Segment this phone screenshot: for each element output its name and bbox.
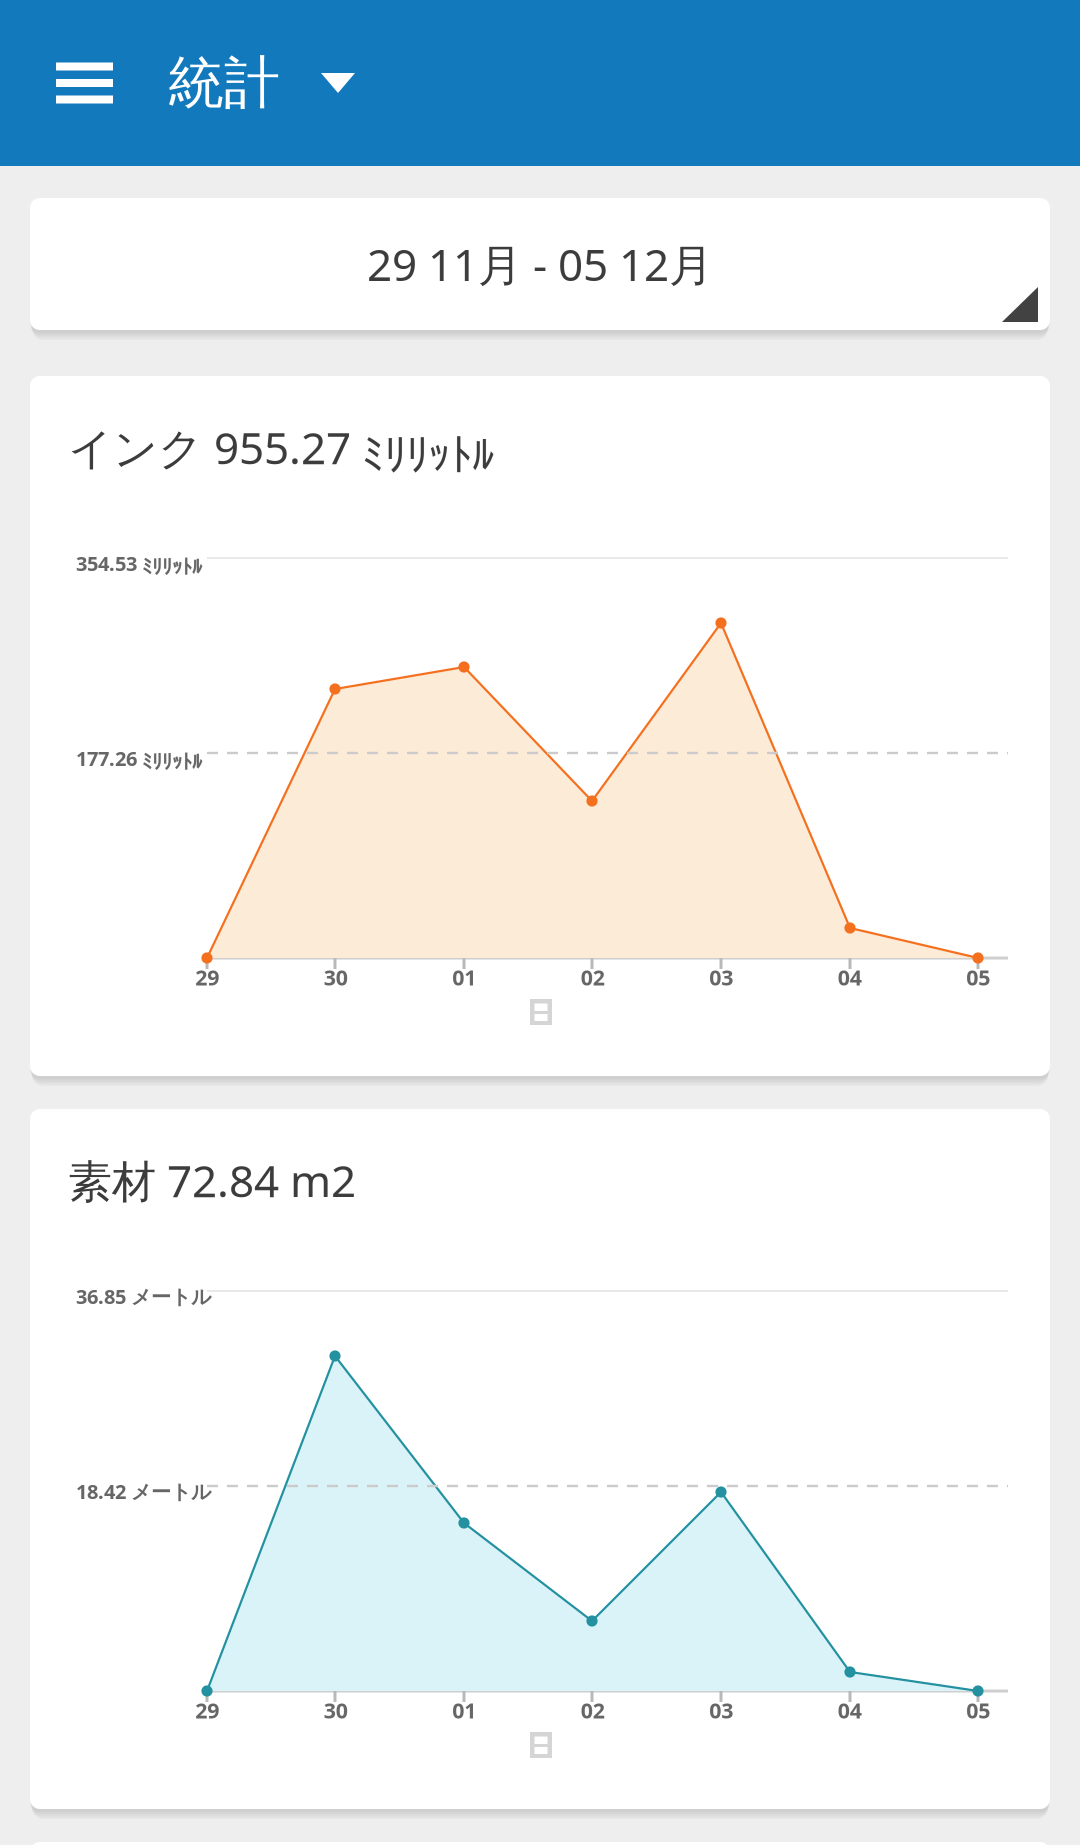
button[interactable]: 29 11月 - 05 12月 xyxy=(30,198,1050,330)
staticText: 05 xyxy=(966,963,990,991)
staticText: 29 xyxy=(195,963,219,991)
staticText: 30 xyxy=(324,963,348,991)
staticText: 03 xyxy=(709,1696,733,1724)
staticText: 177.26 ﾐﾘﾘｯﾄﾙ xyxy=(76,745,202,772)
staticText: 02 xyxy=(581,963,605,991)
staticText: 30 xyxy=(324,1696,348,1724)
staticText: 354.53 ﾐﾘﾘｯﾄﾙ xyxy=(76,550,202,577)
staticText: 02 xyxy=(581,1696,605,1724)
staticText: 29 11月 - 05 12月 xyxy=(367,235,713,293)
staticText: 01 xyxy=(452,1696,476,1724)
staticText: 36.85 メートル xyxy=(76,1283,211,1310)
button[interactable]: Menu xyxy=(0,16,168,149)
staticText: 18.42 メートル xyxy=(76,1478,211,1505)
staticText: 29 xyxy=(195,1696,219,1724)
staticText: 05 xyxy=(966,1696,990,1724)
staticText: 素材 72.84 m2 xyxy=(68,1151,356,1209)
staticText: 03 xyxy=(709,963,733,991)
staticText: 04 xyxy=(838,1696,862,1724)
staticText: インク 955.27 ﾐﾘﾘｯﾄﾙ xyxy=(68,418,494,476)
staticText: 統計 xyxy=(168,49,280,117)
staticText: 01 xyxy=(452,963,476,991)
staticText: 04 xyxy=(838,963,862,991)
button[interactable]: Change period xyxy=(280,33,395,133)
